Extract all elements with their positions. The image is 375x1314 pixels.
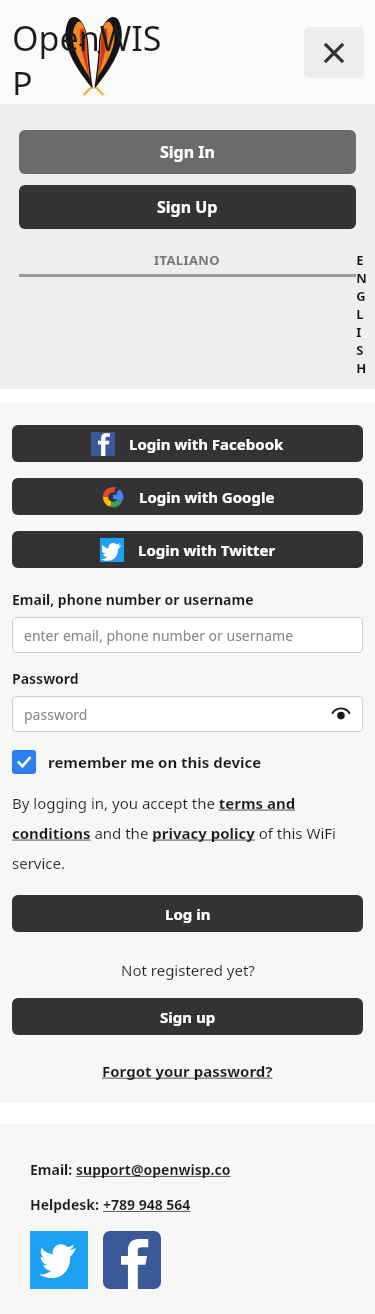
- staticText: Sign In: [160, 141, 215, 163]
- staticText: Sign Up: [157, 196, 218, 218]
- staticText: Email:: [30, 1160, 76, 1179]
- staticText: remember me on this device: [48, 752, 262, 772]
- button[interactable]: Twitter: [30, 1231, 88, 1289]
- staticText: +789 948 564: [103, 1195, 191, 1214]
- button[interactable]: Login with Twitter: [12, 531, 363, 568]
- button[interactable]: Forgot your password?: [12, 1061, 363, 1081]
- staticText: Helpdesk:: [30, 1195, 103, 1214]
- staticText: By logging in, you accept the terms and …: [12, 793, 363, 873]
- staticText: Login with Facebook: [129, 434, 284, 454]
- staticText: Login with Google: [139, 487, 275, 507]
- button[interactable]: Facebook: [103, 1231, 161, 1289]
- button[interactable]: Log in: [12, 895, 363, 932]
- staticText: Log in: [165, 904, 211, 924]
- staticText: OpenWISP: [12, 15, 162, 95]
- button[interactable]: +789 948 564: [103, 1195, 191, 1214]
- staticText: enter email, phone number or username: [24, 626, 294, 645]
- button[interactable]: Sign up: [12, 998, 363, 1035]
- button[interactable]: Sign Up: [19, 185, 356, 229]
- button[interactable]: Close: [304, 27, 364, 78]
- button[interactable]: remember me on this device: [12, 750, 262, 774]
- staticText: Forgot your password?: [102, 1061, 273, 1081]
- button[interactable]: enter email, phone number or username: [12, 617, 363, 653]
- staticText: support@openwisp.co: [76, 1160, 231, 1179]
- staticText: Not registered yet?: [121, 960, 255, 980]
- button[interactable]: ITALIANO: [19, 251, 356, 277]
- button[interactable]: Sign In: [19, 130, 356, 174]
- staticText: Login with Twitter: [138, 540, 276, 560]
- button[interactable]: support@openwisp.co: [76, 1160, 231, 1179]
- staticText: password: [24, 705, 88, 724]
- staticText: Sign up: [160, 1007, 216, 1027]
- button[interactable]: Show password: [329, 702, 353, 726]
- button[interactable]: Login with Facebook: [12, 425, 363, 462]
- button[interactable]: password: [12, 696, 363, 732]
- staticText: Email, phone number or username: [12, 590, 254, 609]
- staticText: Password: [12, 669, 79, 688]
- staticText: ITALIANO: [154, 251, 221, 269]
- button[interactable]: Login with Google: [12, 478, 363, 515]
